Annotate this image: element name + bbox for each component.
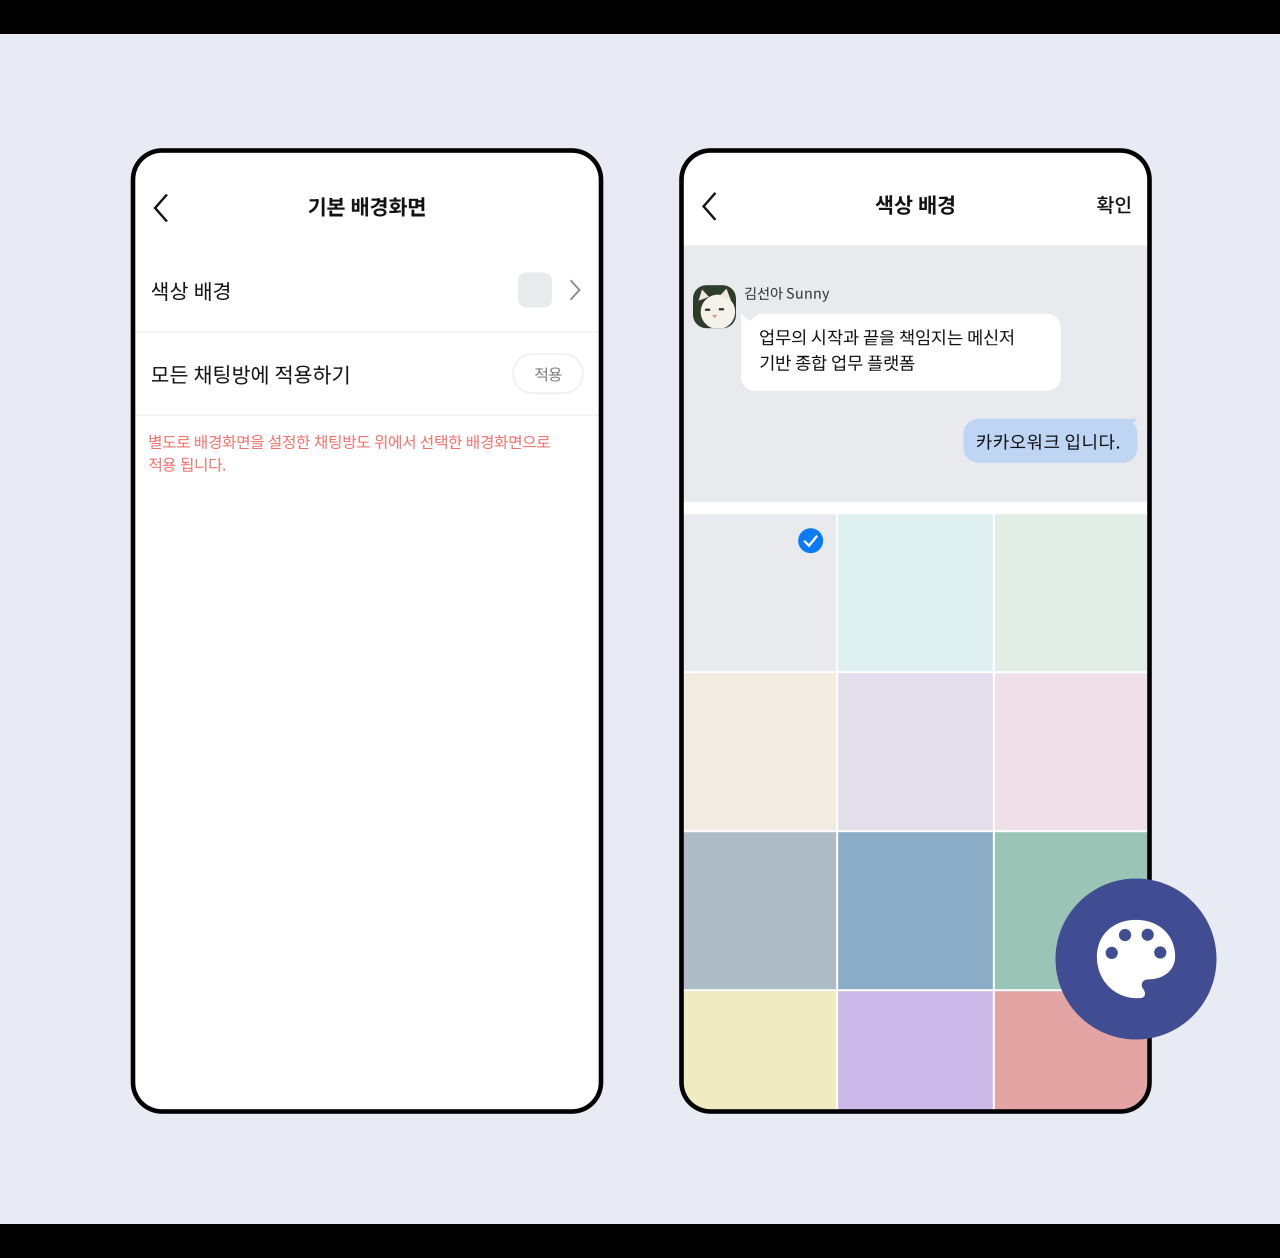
staticText: 적용 bbox=[534, 362, 562, 385]
button[interactable]: 배경 색상 bbox=[681, 832, 836, 989]
staticText: 김선아 Sunny bbox=[744, 282, 829, 303]
button[interactable]: 선택된 배경 색상 bbox=[681, 514, 836, 671]
staticText: 색상 배경 bbox=[875, 189, 956, 219]
staticText: 기본 배경화면 bbox=[307, 190, 426, 220]
button[interactable]: 배경 색상 bbox=[995, 514, 1149, 671]
button[interactable]: 색상 팔레트 bbox=[1055, 878, 1216, 1039]
button[interactable]: 적용 bbox=[513, 354, 583, 393]
staticText: 별도로 배경화면을 설정한 채팅방도 위에서 선택한 배경화면으로 적용 됩니다… bbox=[148, 430, 550, 475]
staticText: 업무의 시작과 끝을 책임지는 메신저 기반 종합 업무 플랫폼 bbox=[759, 324, 1015, 375]
button[interactable]: 뒤로 bbox=[681, 173, 737, 235]
button[interactable]: 확인 bbox=[1076, 173, 1149, 235]
button[interactable]: 배경 색상 bbox=[995, 991, 1149, 1111]
staticText: 확인 bbox=[1096, 190, 1132, 218]
button[interactable]: 배경 색상 bbox=[995, 832, 1149, 989]
button[interactable]: 색상 배경 bbox=[133, 248, 601, 331]
button[interactable]: 뒤로 bbox=[133, 174, 189, 236]
button[interactable]: 배경 색상 bbox=[681, 991, 836, 1111]
button[interactable]: 배경 색상 bbox=[838, 991, 993, 1111]
staticText: 색상 배경 bbox=[150, 275, 231, 305]
button[interactable]: 배경 색상 bbox=[995, 673, 1149, 830]
staticText: 카카오워크 입니다. bbox=[975, 428, 1120, 454]
staticText: 모든 채팅방에 적용하기 bbox=[150, 359, 350, 388]
button[interactable]: 배경 색상 bbox=[681, 673, 836, 830]
